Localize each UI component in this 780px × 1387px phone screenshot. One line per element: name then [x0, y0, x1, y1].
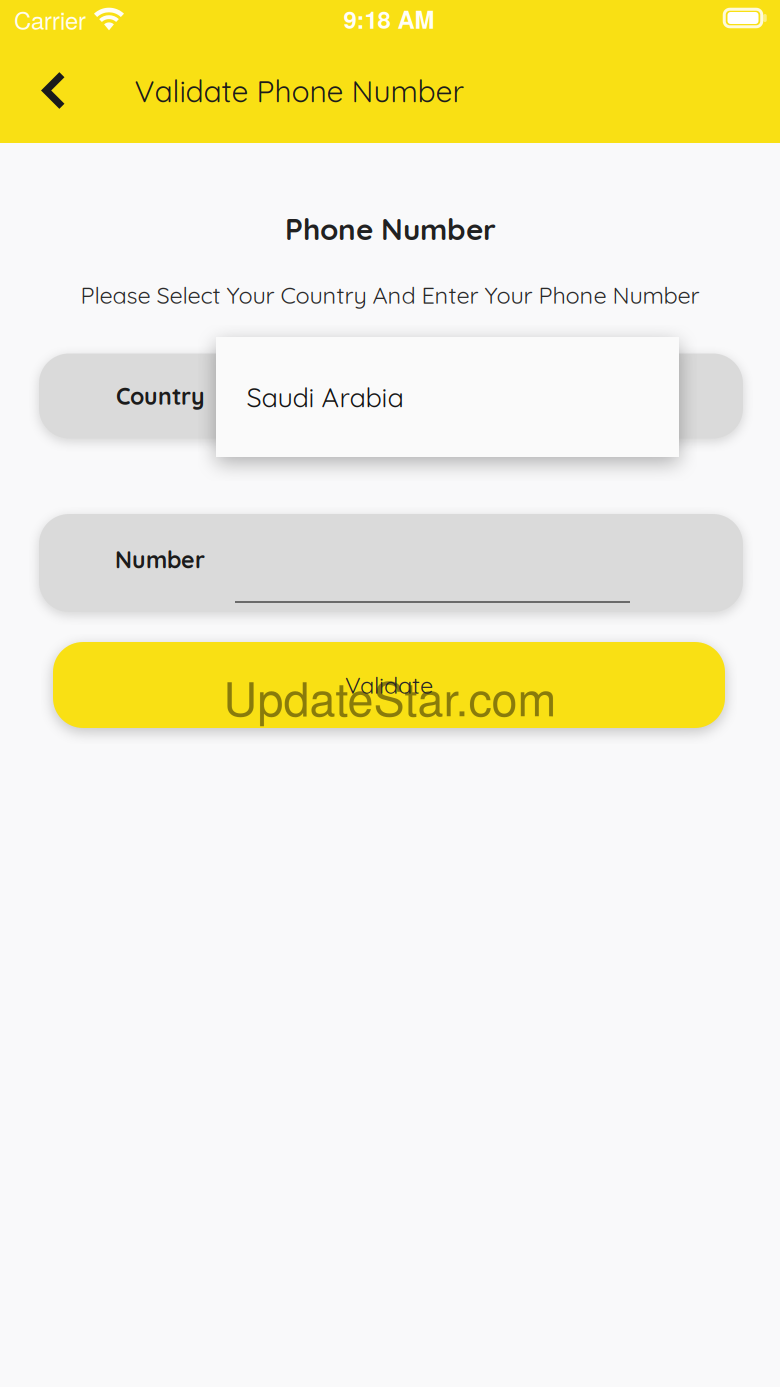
- staticText: Saudi Arabia: [246, 380, 403, 414]
- staticText: Validate: [345, 670, 433, 700]
- staticText: Please Select Your Country And Enter You…: [80, 280, 699, 310]
- button[interactable]: Back: [8, 46, 100, 134]
- button[interactable]: Country: [39, 353, 743, 438]
- staticText: 9:18 AM: [343, 2, 434, 36]
- staticText: UpdateStar.com: [223, 663, 556, 729]
- button[interactable]: UpdateStar.com: [53, 642, 725, 728]
- staticText: Phone Number: [285, 210, 496, 247]
- button[interactable]: Number: [39, 514, 743, 612]
- staticText: Country: [116, 382, 205, 410]
- staticText: Number: [115, 545, 205, 574]
- staticText: Validate Phone Number: [134, 72, 464, 110]
- staticText: Carrier: [14, 2, 86, 37]
